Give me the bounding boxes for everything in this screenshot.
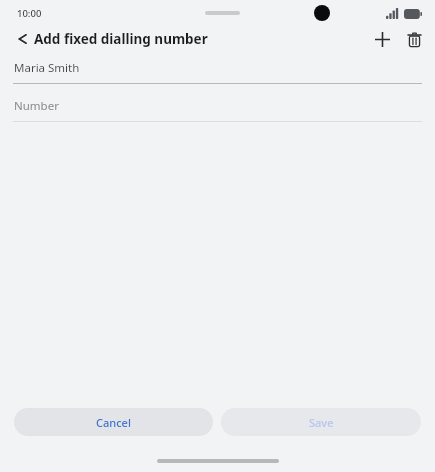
staticText: Save <box>309 415 334 430</box>
staticText: Number <box>14 98 59 114</box>
button[interactable]: Back <box>8 25 38 53</box>
button[interactable]: Delete <box>399 25 429 53</box>
button[interactable]: Cancel <box>14 408 213 436</box>
staticText: Maria Smith <box>14 60 80 76</box>
staticText: Cancel <box>96 415 131 430</box>
button[interactable]: Maria Smith <box>13 57 422 84</box>
staticText: Add fixed dialling number <box>34 30 208 48</box>
button[interactable]: Number <box>13 95 422 122</box>
button[interactable]: Add <box>367 25 397 53</box>
staticText: 10:00 <box>17 7 42 20</box>
button[interactable]: Save <box>221 408 421 436</box>
